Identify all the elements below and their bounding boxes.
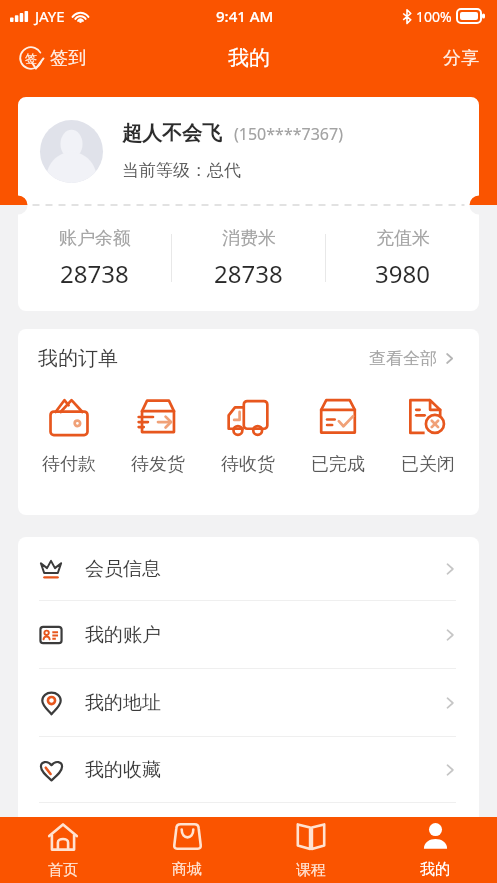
staticText: 28738 bbox=[60, 257, 129, 290]
staticText: 9:41 AM bbox=[216, 6, 274, 26]
button[interactable]: 待发货 bbox=[113, 387, 203, 480]
button[interactable]: 消费米 bbox=[172, 205, 325, 311]
button[interactable]: 签 bbox=[0, 40, 96, 76]
staticText: 超人不会飞 bbox=[122, 121, 222, 146]
staticText: 账户余额 bbox=[59, 227, 131, 250]
staticText: 我的订单 bbox=[38, 346, 118, 371]
button[interactable]: 分享 bbox=[433, 41, 497, 76]
staticText: 分享 bbox=[443, 47, 479, 70]
button[interactable]: 账户余额 bbox=[18, 205, 171, 311]
staticText: 签 bbox=[25, 51, 37, 66]
button[interactable]: 待收货 bbox=[203, 387, 293, 480]
button[interactable]: 会员信息 bbox=[18, 537, 479, 600]
staticText: 已关闭 bbox=[401, 453, 455, 476]
button[interactable]: 我的账户 bbox=[18, 601, 479, 668]
staticText: 已完成 bbox=[311, 453, 365, 476]
staticText: JAYE bbox=[35, 6, 65, 26]
button[interactable]: Store bbox=[125, 817, 249, 883]
button[interactable]: 我的地址 bbox=[18, 669, 479, 736]
other: Courses bbox=[296, 822, 326, 852]
staticText: 商城 bbox=[172, 860, 202, 879]
staticText: 消费米 bbox=[222, 227, 276, 250]
button[interactable]: Courses bbox=[249, 817, 373, 883]
button[interactable]: 已关闭 bbox=[383, 387, 473, 480]
button[interactable]: 我的收藏 bbox=[18, 737, 479, 802]
staticText: 查看全部 bbox=[369, 348, 437, 369]
button[interactable]: Profile bbox=[373, 817, 497, 883]
staticText: 我的账户 bbox=[85, 623, 161, 647]
staticText: 我的 bbox=[420, 860, 450, 879]
button[interactable]: 充值米 bbox=[326, 205, 479, 311]
staticText: 待付款 bbox=[42, 453, 96, 476]
staticText: 签到 bbox=[50, 47, 86, 70]
staticText: 100% bbox=[416, 7, 452, 26]
button[interactable]: 待付款 bbox=[24, 387, 113, 480]
staticText: 3980 bbox=[375, 257, 430, 290]
staticText: 会员信息 bbox=[85, 557, 161, 581]
staticText: 待收货 bbox=[221, 453, 275, 476]
staticText: 首页 bbox=[48, 861, 78, 880]
staticText: 我的收藏 bbox=[85, 758, 161, 782]
staticText: 待发货 bbox=[131, 453, 185, 476]
button[interactable]: 已完成 bbox=[293, 387, 383, 480]
other: Store bbox=[173, 822, 202, 851]
staticText: 课程 bbox=[296, 861, 326, 880]
staticText: (150****7367) bbox=[234, 123, 343, 145]
staticText: 28738 bbox=[214, 257, 283, 290]
staticText: 我的地址 bbox=[85, 691, 161, 715]
other: Profile bbox=[421, 822, 450, 851]
button[interactable]: Home bbox=[0, 817, 125, 883]
other: Home bbox=[48, 822, 78, 852]
staticText: 充值米 bbox=[376, 227, 430, 250]
staticText: 我的 bbox=[228, 45, 270, 71]
staticText: 当前等级：总代 bbox=[122, 160, 241, 181]
button[interactable]: 查看全部 bbox=[365, 344, 461, 373]
